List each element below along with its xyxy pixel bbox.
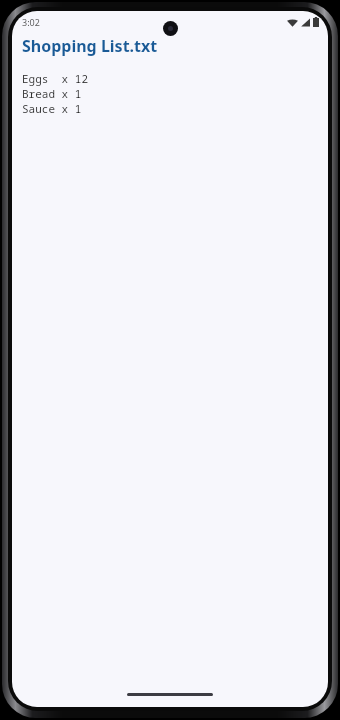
button[interactable]: Home gesture handle [127, 693, 213, 696]
staticText: Eggs x 12 [22, 71, 88, 86]
staticText: Shopping List.txt [22, 35, 158, 57]
staticText: Sauce x 1 [22, 101, 82, 116]
staticText: Bread x 1 [22, 86, 82, 101]
staticText: 3:02 [22, 16, 40, 28]
